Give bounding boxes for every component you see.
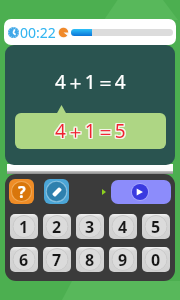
button[interactable]: 9 (109, 247, 137, 272)
staticText: 4＋1＝5 (55, 117, 126, 143)
staticText: 4＋1＝5 (55, 119, 126, 145)
staticText: 9 (118, 249, 128, 271)
button[interactable]: 1 (10, 214, 38, 239)
staticText: 4＋1＝4 (55, 69, 126, 95)
button[interactable]: Play (111, 180, 171, 204)
button[interactable]: Hint (9, 179, 34, 204)
staticText: 1 (19, 216, 29, 238)
staticText: 2 (52, 216, 62, 238)
staticText: 4＋1＝5 (56, 118, 127, 144)
staticText: 0 (151, 249, 161, 271)
staticText: ? (18, 181, 26, 203)
button[interactable]: Draw (44, 179, 69, 204)
staticText: 5 (151, 216, 161, 238)
staticText: 4＋1＝5 (54, 117, 125, 143)
staticText: 6 (19, 249, 29, 271)
staticText: 7 (52, 249, 62, 271)
button[interactable]: 2 (43, 214, 71, 239)
button[interactable]: 0 (142, 247, 170, 272)
staticText: 00:22 (20, 23, 56, 42)
staticText: 4＋1＝5 (54, 119, 125, 145)
button[interactable]: 6 (10, 247, 38, 272)
button[interactable]: 3 (76, 214, 104, 239)
button[interactable]: 4 (109, 214, 137, 239)
staticText: 3 (85, 216, 95, 238)
button[interactable]: 5 (142, 214, 170, 239)
button[interactable]: 7 (43, 247, 71, 272)
button[interactable]: 8 (76, 247, 104, 272)
staticText: 4＋1＝5 (56, 119, 127, 145)
staticText: 4＋1＝5 (56, 117, 127, 143)
staticText: 8 (85, 249, 95, 271)
staticText: 4＋1＝5 (54, 118, 125, 144)
staticText: 4 (118, 216, 128, 238)
staticText: 4＋1＝5 (55, 118, 126, 144)
